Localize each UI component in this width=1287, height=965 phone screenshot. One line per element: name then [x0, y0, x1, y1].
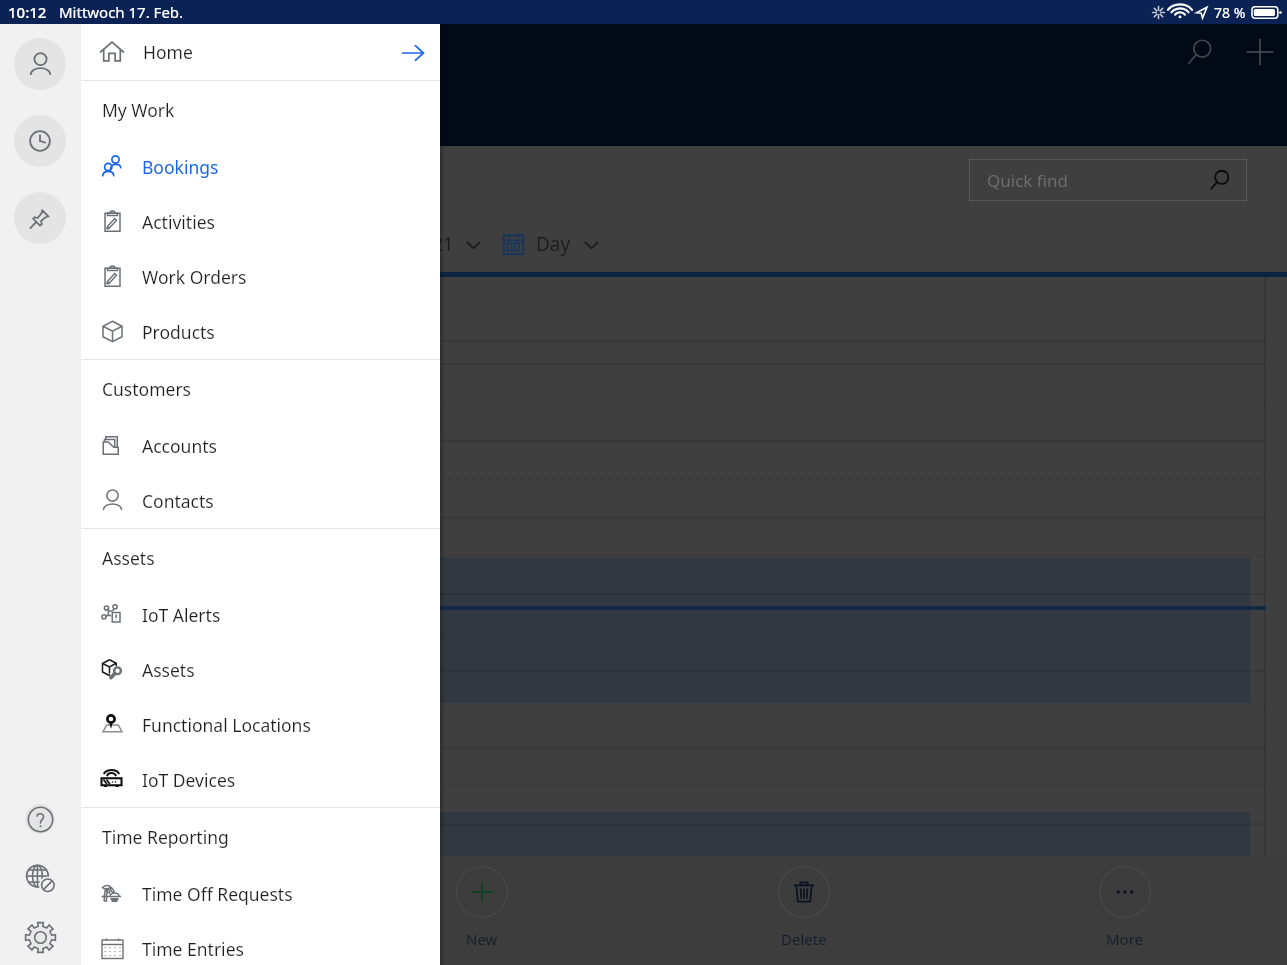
button[interactable]: Time Off Requests [81, 866, 440, 921]
button[interactable]: Help [14, 793, 66, 845]
button[interactable]: Recent [14, 115, 66, 167]
button[interactable]: Functional Locations [81, 697, 440, 752]
staticText: Products [142, 320, 215, 344]
button[interactable]: IoT Alerts [81, 587, 440, 642]
staticText: Time Off Requests [142, 882, 293, 906]
button[interactable]: New record [1236, 28, 1284, 76]
button[interactable]: More [1082, 856, 1168, 965]
staticText: Home [143, 40, 193, 64]
button[interactable]: Products [81, 304, 440, 359]
button[interactable]: New [439, 856, 525, 965]
staticText: Delete [781, 929, 827, 949]
staticText: Functional Locations [142, 713, 311, 737]
button[interactable]: Offline mode [14, 852, 66, 904]
button[interactable]: Bookings [81, 139, 440, 194]
staticText: Customers [102, 377, 192, 401]
button[interactable]: Assets [81, 642, 440, 697]
staticText: Mittwoch 17. Feb. [59, 2, 184, 22]
staticText: More [1106, 929, 1144, 949]
button[interactable]: Search [1176, 28, 1224, 76]
staticText: Assets [142, 658, 195, 682]
button[interactable]: Home [81, 24, 440, 80]
button[interactable]: Quick find [969, 159, 1247, 201]
staticText: IoT Devices [142, 768, 236, 792]
staticText: Quick find [987, 169, 1069, 192]
staticText: Bookings [142, 155, 219, 179]
staticText: 10:12 [8, 2, 47, 22]
staticText: Time Entries [142, 937, 244, 961]
button[interactable]: Profile [14, 38, 66, 90]
button[interactable]: Settings [14, 911, 66, 963]
staticText: Activities [142, 210, 215, 234]
staticText: 78 % [1214, 3, 1246, 22]
staticText: Assets [102, 546, 155, 570]
staticText: 21 [432, 231, 454, 257]
button[interactable]: Work Orders [81, 249, 440, 304]
staticText: Time Reporting [102, 825, 229, 849]
staticText: Work Orders [142, 265, 247, 289]
button[interactable]: Time Entries [81, 921, 440, 965]
button[interactable]: Contacts [81, 473, 440, 528]
staticText: Accounts [142, 434, 217, 458]
staticText: Day [536, 231, 571, 257]
button[interactable]: IoT Devices [81, 752, 440, 807]
button[interactable]: Accounts [81, 418, 440, 473]
staticText: My Work [102, 98, 175, 122]
button[interactable]: Activities [81, 194, 440, 249]
staticText: New [466, 929, 498, 949]
staticText: IoT Alerts [142, 603, 221, 627]
staticText: Contacts [142, 489, 214, 513]
button[interactable]: Pinned [14, 192, 66, 244]
button[interactable]: Delete [761, 856, 847, 965]
